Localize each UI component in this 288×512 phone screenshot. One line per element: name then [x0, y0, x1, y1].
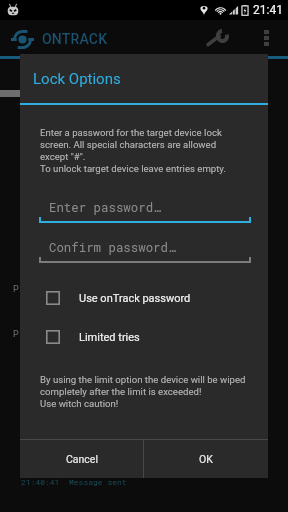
- staticText: Enter password…: [49, 199, 161, 215]
- staticText: P: [13, 284, 19, 295]
- button[interactable]: More options: [250, 20, 283, 56]
- staticText: Lock Options: [33, 70, 121, 88]
- button[interactable]: Use onTrack password: [20, 287, 268, 309]
- staticText: By using the limit option the device wil…: [40, 374, 252, 409]
- staticText: Use onTrack password: [79, 292, 191, 305]
- button[interactable]: Enter password…: [39, 195, 251, 225]
- button[interactable]: OK: [144, 440, 268, 478]
- staticText: 21:40:41 Message sent: [21, 477, 127, 488]
- button[interactable]: Cancel: [20, 440, 143, 478]
- staticText: Limited tries: [79, 331, 140, 344]
- button[interactable]: Settings: [182, 20, 250, 56]
- staticText: Confirm password…: [49, 239, 176, 255]
- staticText: Enter a password for the target device l…: [40, 127, 230, 174]
- staticText: 21:41: [253, 3, 283, 17]
- button[interactable]: Confirm password…: [39, 235, 251, 265]
- button[interactable]: Limited tries: [20, 326, 268, 348]
- staticText: ONTRACK: [42, 31, 108, 47]
- staticText: P: [13, 329, 19, 340]
- staticText: OK: [199, 453, 213, 465]
- staticText: Cancel: [66, 453, 98, 465]
